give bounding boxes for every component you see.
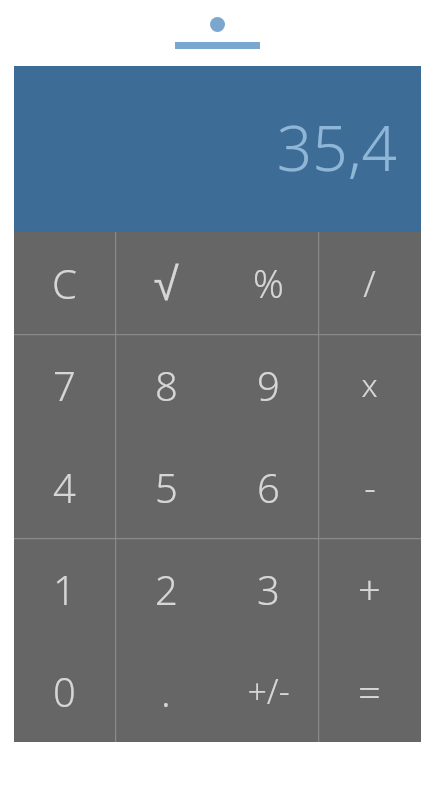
staticText: 2	[155, 562, 178, 616]
button[interactable]: 3	[217, 538, 319, 640]
button[interactable]: Square root	[115, 232, 217, 334]
button[interactable]: Divide	[318, 232, 421, 334]
staticText: %	[253, 257, 284, 309]
button[interactable]: Add	[318, 538, 421, 640]
staticText: 1	[53, 562, 76, 616]
staticText: 6	[257, 460, 280, 514]
staticText: √	[153, 258, 179, 309]
staticText: 5	[155, 460, 178, 514]
button[interactable]: 1	[14, 538, 115, 640]
button[interactable]: 2	[115, 538, 217, 640]
staticText: +	[358, 562, 381, 616]
staticText: 9	[257, 358, 280, 412]
staticText: 4	[53, 460, 76, 514]
button[interactable]: 0	[14, 640, 115, 742]
staticText: 8	[155, 358, 178, 412]
button[interactable]: Percent	[217, 232, 319, 334]
staticText: C	[52, 256, 77, 310]
button[interactable]: Subtract	[318, 436, 421, 538]
button[interactable]: Toggle sign	[217, 640, 319, 742]
button[interactable]: 8	[115, 334, 217, 436]
staticText: +/-	[247, 668, 290, 714]
staticText: =	[358, 664, 381, 718]
staticText: x	[361, 363, 378, 407]
button[interactable]: Decimal point	[115, 640, 217, 742]
button[interactable]: 9	[217, 334, 319, 436]
button[interactable]: Multiply	[318, 334, 421, 436]
staticText: 3	[257, 562, 280, 616]
button[interactable]: Equals	[318, 640, 421, 742]
button[interactable]: 5	[115, 436, 217, 538]
staticText: 35,4	[276, 105, 397, 189]
staticText: 7	[53, 358, 76, 412]
staticText: -	[364, 463, 376, 512]
staticText: 0	[53, 664, 76, 718]
staticText: .	[161, 664, 171, 718]
button[interactable]: 6	[217, 436, 319, 538]
button[interactable]: 7	[14, 334, 115, 436]
button[interactable]: 4	[14, 436, 115, 538]
staticText: /	[363, 259, 376, 308]
button[interactable]: Clear	[14, 232, 115, 334]
